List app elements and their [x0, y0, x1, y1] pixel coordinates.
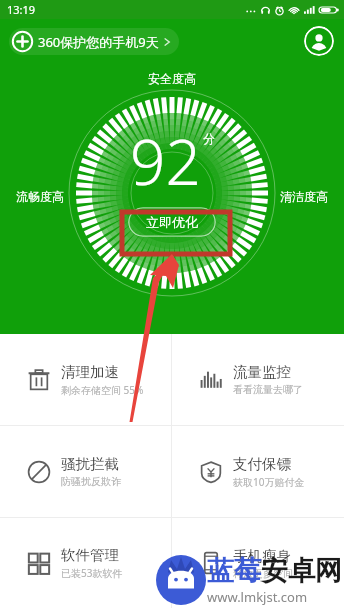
button[interactable]: 手机瘦身	[172, 518, 344, 608]
staticText: 已装53款软件	[61, 566, 123, 580]
staticText: 立即优化	[146, 214, 198, 230]
button[interactable]: 骚扰拦截	[0, 426, 171, 517]
button[interactable]: 流量监控	[172, 334, 344, 425]
button[interactable]: 软件管理	[0, 518, 171, 608]
button[interactable]: 支付保镖	[172, 426, 344, 517]
button[interactable]: 立即优化	[128, 207, 216, 237]
staticText: 清洁度高	[280, 189, 328, 204]
staticText: 流量监控	[233, 363, 291, 381]
staticText: 看看流量去哪了	[233, 383, 303, 396]
staticText: 流畅度高	[16, 189, 64, 204]
button[interactable]: 清理加速	[0, 334, 171, 425]
staticText: 手机瘦身	[233, 547, 291, 565]
staticText: 获取10万赔付金	[233, 475, 305, 489]
button[interactable]: 360保护您的手机9天	[9, 28, 179, 55]
staticText: 360保护您的手机9天	[38, 33, 159, 51]
staticText: 剩余存储空间 55%	[61, 383, 144, 397]
staticText: 蓝莓	[207, 554, 261, 588]
staticText: 92	[130, 119, 201, 203]
staticText: 骚扰拦截	[61, 455, 119, 473]
staticText: 防骚扰反欺诈	[61, 475, 121, 488]
staticText: 软件管理	[61, 546, 119, 564]
staticText: 清理加速	[61, 363, 119, 381]
staticText: 释放更多空间	[233, 567, 293, 580]
staticText: www.lmkjst.com	[207, 588, 308, 606]
staticText: 支付保镖	[233, 455, 291, 473]
staticText: 13:19	[7, 2, 36, 17]
staticText: 分	[203, 131, 215, 146]
button[interactable]: Profile	[304, 26, 334, 56]
staticText: 安全度高	[148, 71, 196, 86]
staticText: 安卓网	[261, 554, 342, 588]
